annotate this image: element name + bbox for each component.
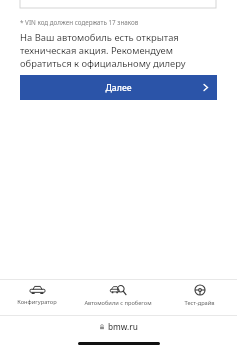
staticText: bmw.ru [108, 321, 138, 332]
staticText: Тест-драйв [184, 299, 215, 307]
staticText: Далее [105, 82, 132, 94]
button[interactable] [20, 0, 216, 8]
button[interactable]: Автомобили с пробегом [72, 280, 164, 315]
button[interactable]: Тест-драйв [164, 280, 235, 315]
other: Тест-драйв [194, 284, 206, 296]
other: Конфигуратор [29, 284, 46, 295]
other: Автомобили с пробегом [110, 284, 127, 296]
button[interactable]: Secure [0, 316, 237, 336]
button[interactable]: Конфигуратор [2, 280, 72, 315]
staticText: На Ваш автомобиль есть открытая техничес… [20, 31, 217, 70]
staticText: Автомобили с пробегом [84, 299, 152, 307]
button[interactable]: Далее [20, 75, 217, 100]
staticText: * VIN код должен содержать 17 знаков [20, 18, 139, 27]
other: Secure [99, 324, 105, 330]
staticText: Конфигуратор [17, 298, 57, 306]
